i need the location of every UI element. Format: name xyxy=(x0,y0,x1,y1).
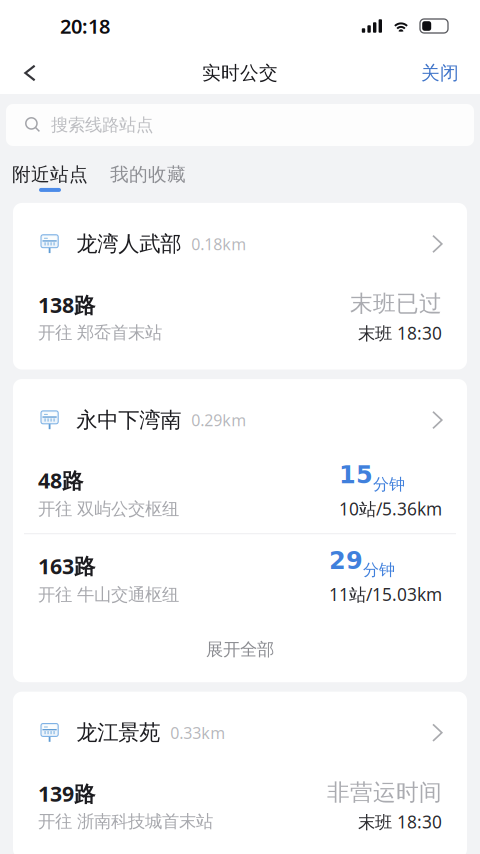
staticText: 搜索线路站点 xyxy=(51,114,153,136)
staticText: 开往 浙南科技城首末站 xyxy=(38,811,213,832)
button[interactable]: 龙江景苑 xyxy=(13,692,467,774)
staticText: 我的收藏 xyxy=(110,163,186,186)
staticText: 末班 18:30 xyxy=(358,810,442,833)
staticText: 10站/5.36km xyxy=(339,497,442,520)
staticText: 末班已过 xyxy=(350,290,442,317)
staticText: 非营运时间 xyxy=(327,778,442,806)
staticText: 0.33km xyxy=(170,722,225,743)
staticText: 实时公交 xyxy=(202,61,278,84)
staticText: 163路 xyxy=(38,552,95,580)
button[interactable]: Back xyxy=(5,52,55,94)
staticText: 分钟 xyxy=(373,474,405,494)
button[interactable]: 永中下湾南 xyxy=(13,379,467,461)
staticText: 附近站点 xyxy=(12,163,88,186)
staticText: 永中下湾南 xyxy=(76,407,181,433)
button[interactable]: 138路 xyxy=(13,290,467,345)
staticText: 29 xyxy=(329,547,363,575)
button[interactable]: 展开全部 xyxy=(206,606,274,682)
staticText: 龙江景苑 xyxy=(76,720,160,746)
staticText: 0.18km xyxy=(191,233,246,254)
staticText: 48路 xyxy=(38,466,83,494)
staticText: 11站/15.03km xyxy=(329,583,442,606)
staticText: 关闭 xyxy=(421,61,459,84)
staticText: 0.29km xyxy=(191,409,246,431)
staticText: 开往 郑岙首末站 xyxy=(38,322,162,343)
button[interactable]: 龙湾人武部 xyxy=(13,203,467,285)
staticText: 末班 18:30 xyxy=(358,321,442,344)
button[interactable]: 48路 xyxy=(13,461,467,520)
staticText: 开往 双屿公交枢纽 xyxy=(38,498,179,520)
button[interactable]: 139路 xyxy=(13,778,467,833)
button[interactable]: 搜索线路站点 xyxy=(6,104,474,146)
staticText: 20:18 xyxy=(60,13,110,39)
staticText: 开往 牛山交通枢纽 xyxy=(38,584,179,605)
staticText: 139路 xyxy=(38,779,95,808)
staticText: 138路 xyxy=(38,291,95,319)
staticText: 分钟 xyxy=(363,560,395,580)
button[interactable]: 我的收藏 xyxy=(99,163,186,192)
button[interactable]: 附近站点 xyxy=(0,163,99,192)
staticText: 展开全部 xyxy=(206,639,274,660)
button[interactable]: 关闭 xyxy=(399,52,480,94)
staticText: 龙湾人武部 xyxy=(76,231,181,257)
button[interactable]: 163路 xyxy=(13,547,467,606)
staticText: 15 xyxy=(339,461,373,489)
